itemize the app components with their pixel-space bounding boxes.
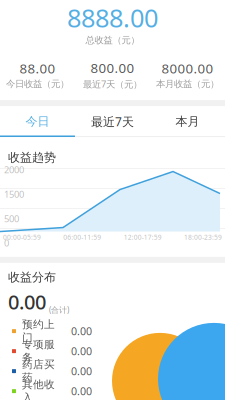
staticText: 总收益（元） [85,34,139,46]
button[interactable]: 其他收入 [12,381,225,400]
staticText: 预约上门 [22,318,55,344]
staticText: 0.00 [8,289,46,315]
staticText: 00:00-05:59 [3,233,41,242]
staticText: 最近7天（元） [83,78,142,90]
staticText: 2000 [4,163,24,176]
staticText: 本月 [175,114,199,129]
staticText: 其他收入 [22,378,55,400]
staticText: 0.00 [71,324,92,338]
button[interactable]: 最近7天 [75,106,150,137]
button[interactable]: 本月 [150,106,225,137]
staticText: 8888.00 [67,1,158,34]
staticText: 收益趋势 [8,150,56,165]
staticText: 88.00 [19,59,55,77]
staticText: 500 [4,212,19,225]
staticText: 本月收益（元） [156,78,219,90]
staticText: 12:00-17:59 [124,233,162,242]
staticText: (合计) [49,304,69,315]
button[interactable]: 今日 [0,106,75,137]
staticText: 0.00 [71,364,92,378]
staticText: 06:00-11:59 [63,233,101,242]
staticText: 收益分布 [8,270,56,284]
staticText: 今日 [25,114,49,129]
staticText: 专项服务 [22,338,55,364]
staticText: 8000.00 [161,59,213,77]
staticText: 最近7天 [91,114,134,129]
staticText: 1500 [4,188,24,200]
staticText: 0 [4,237,9,249]
staticText: 800.00 [90,59,134,77]
button[interactable]: 药店买药 [12,361,225,381]
button[interactable]: 专项服务 [12,341,225,361]
button[interactable]: 预约上门 [12,321,225,341]
staticText: 0.00 [71,344,92,358]
staticText: 0.00 [71,384,92,398]
staticText: 今日收益（元） [6,78,69,90]
staticText: 18:00-23:59 [184,233,222,242]
staticText: 药店买药 [22,358,55,384]
